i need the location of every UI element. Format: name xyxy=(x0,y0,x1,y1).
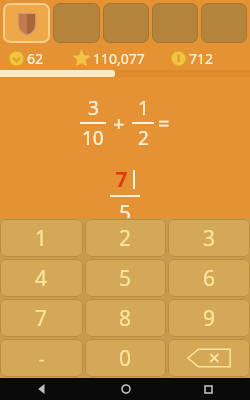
button[interactable]: 8 xyxy=(85,299,166,337)
button[interactable]: 62 xyxy=(8,49,72,68)
staticText: 62 xyxy=(27,49,44,68)
staticText: 0 xyxy=(119,344,132,373)
button[interactable]: 3 xyxy=(168,219,250,257)
button[interactable]: 2 xyxy=(85,219,166,257)
button[interactable]: 0 xyxy=(85,339,166,377)
button[interactable]: Empty badge slot xyxy=(103,3,149,43)
button[interactable]: Empty badge slot xyxy=(201,3,247,43)
button[interactable]: 110,077 xyxy=(72,49,170,68)
staticText: 1 xyxy=(138,95,149,121)
staticText: 5 xyxy=(119,264,132,293)
button[interactable]: 712 xyxy=(170,49,242,68)
staticText: 2 xyxy=(138,125,149,151)
staticText: 3 xyxy=(88,95,99,121)
staticText: 712 xyxy=(189,49,214,68)
staticText: = xyxy=(158,110,170,137)
button[interactable]: - xyxy=(0,339,83,377)
staticText: 7 xyxy=(35,304,48,333)
button[interactable]: 1 xyxy=(0,219,83,257)
button[interactable]: 9 xyxy=(168,299,250,337)
staticText: 8 xyxy=(119,304,132,333)
staticText: 1 xyxy=(35,224,48,253)
staticText: 5 xyxy=(119,199,132,218)
button[interactable]: Shield badge xyxy=(3,3,50,43)
button[interactable]: 6 xyxy=(168,259,250,297)
button[interactable]: Backspace xyxy=(168,339,250,377)
button[interactable]: 7 xyxy=(0,299,83,337)
button[interactable]: 5 xyxy=(85,259,166,297)
staticText: 4 xyxy=(35,264,48,293)
staticText: 110,077 xyxy=(93,49,145,68)
button[interactable]: Empty badge slot xyxy=(53,3,100,43)
button[interactable]: Home xyxy=(84,378,167,400)
staticText: 3 xyxy=(203,224,216,253)
button[interactable]: Empty badge slot xyxy=(152,3,198,43)
staticText: + xyxy=(113,110,125,137)
button[interactable]: Back xyxy=(0,378,84,400)
staticText: 6 xyxy=(203,264,216,293)
button[interactable]: 4 xyxy=(0,259,83,297)
button[interactable]: Recent apps xyxy=(167,378,250,400)
staticText: 10 xyxy=(82,125,104,151)
staticText: - xyxy=(39,347,45,370)
staticText: 7 xyxy=(115,165,128,194)
staticText: 9 xyxy=(203,304,216,333)
staticText: 2 xyxy=(119,224,132,253)
